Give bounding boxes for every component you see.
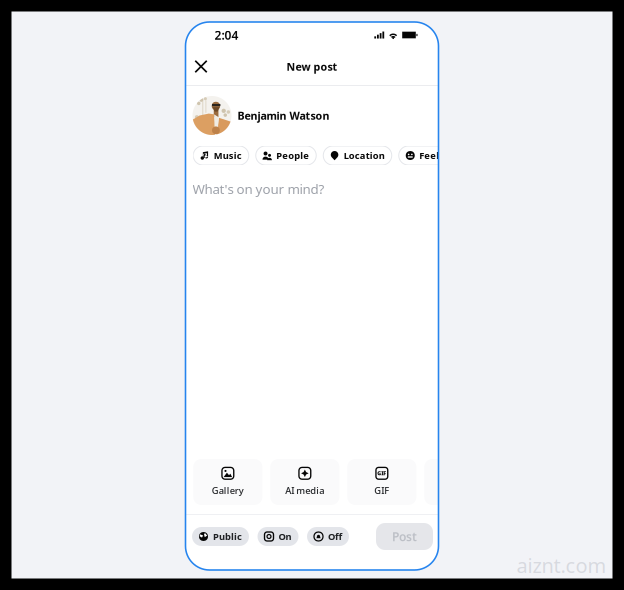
staticText: Benjamin Watson — [237, 108, 329, 123]
button[interactable]: Off — [307, 527, 349, 546]
staticText: AI media — [285, 484, 324, 497]
staticText: Location — [344, 149, 385, 162]
staticText: People — [276, 149, 309, 162]
button[interactable]: Post — [376, 523, 433, 550]
staticText: GIF — [377, 470, 386, 477]
staticText: New post — [286, 59, 337, 74]
staticText: Public — [213, 530, 242, 543]
staticText: Feeling — [419, 149, 454, 162]
button[interactable]: People — [256, 146, 316, 165]
staticText: Off — [328, 530, 342, 543]
staticText: On — [278, 530, 291, 543]
button[interactable]: AI media — [270, 459, 339, 505]
staticText: What's on your mind? — [192, 180, 324, 198]
button[interactable]: Location — [323, 146, 392, 165]
button[interactable]: Tag — [424, 459, 493, 505]
button[interactable]: Gallery — [193, 459, 262, 505]
staticText: 2:04 — [214, 27, 238, 43]
staticText: Post — [392, 528, 417, 544]
staticText: Music — [214, 149, 242, 162]
staticText: aiznt.com — [516, 552, 606, 578]
staticText: GIF — [374, 484, 389, 497]
button[interactable]: Music — [193, 146, 249, 165]
button[interactable]: Feeling — [399, 146, 461, 165]
button[interactable]: GIF — [347, 459, 416, 505]
button[interactable]: Close — [188, 53, 214, 79]
button[interactable]: Public — [192, 527, 249, 546]
button[interactable]: On — [257, 527, 298, 546]
staticText: Gallery — [212, 484, 244, 497]
